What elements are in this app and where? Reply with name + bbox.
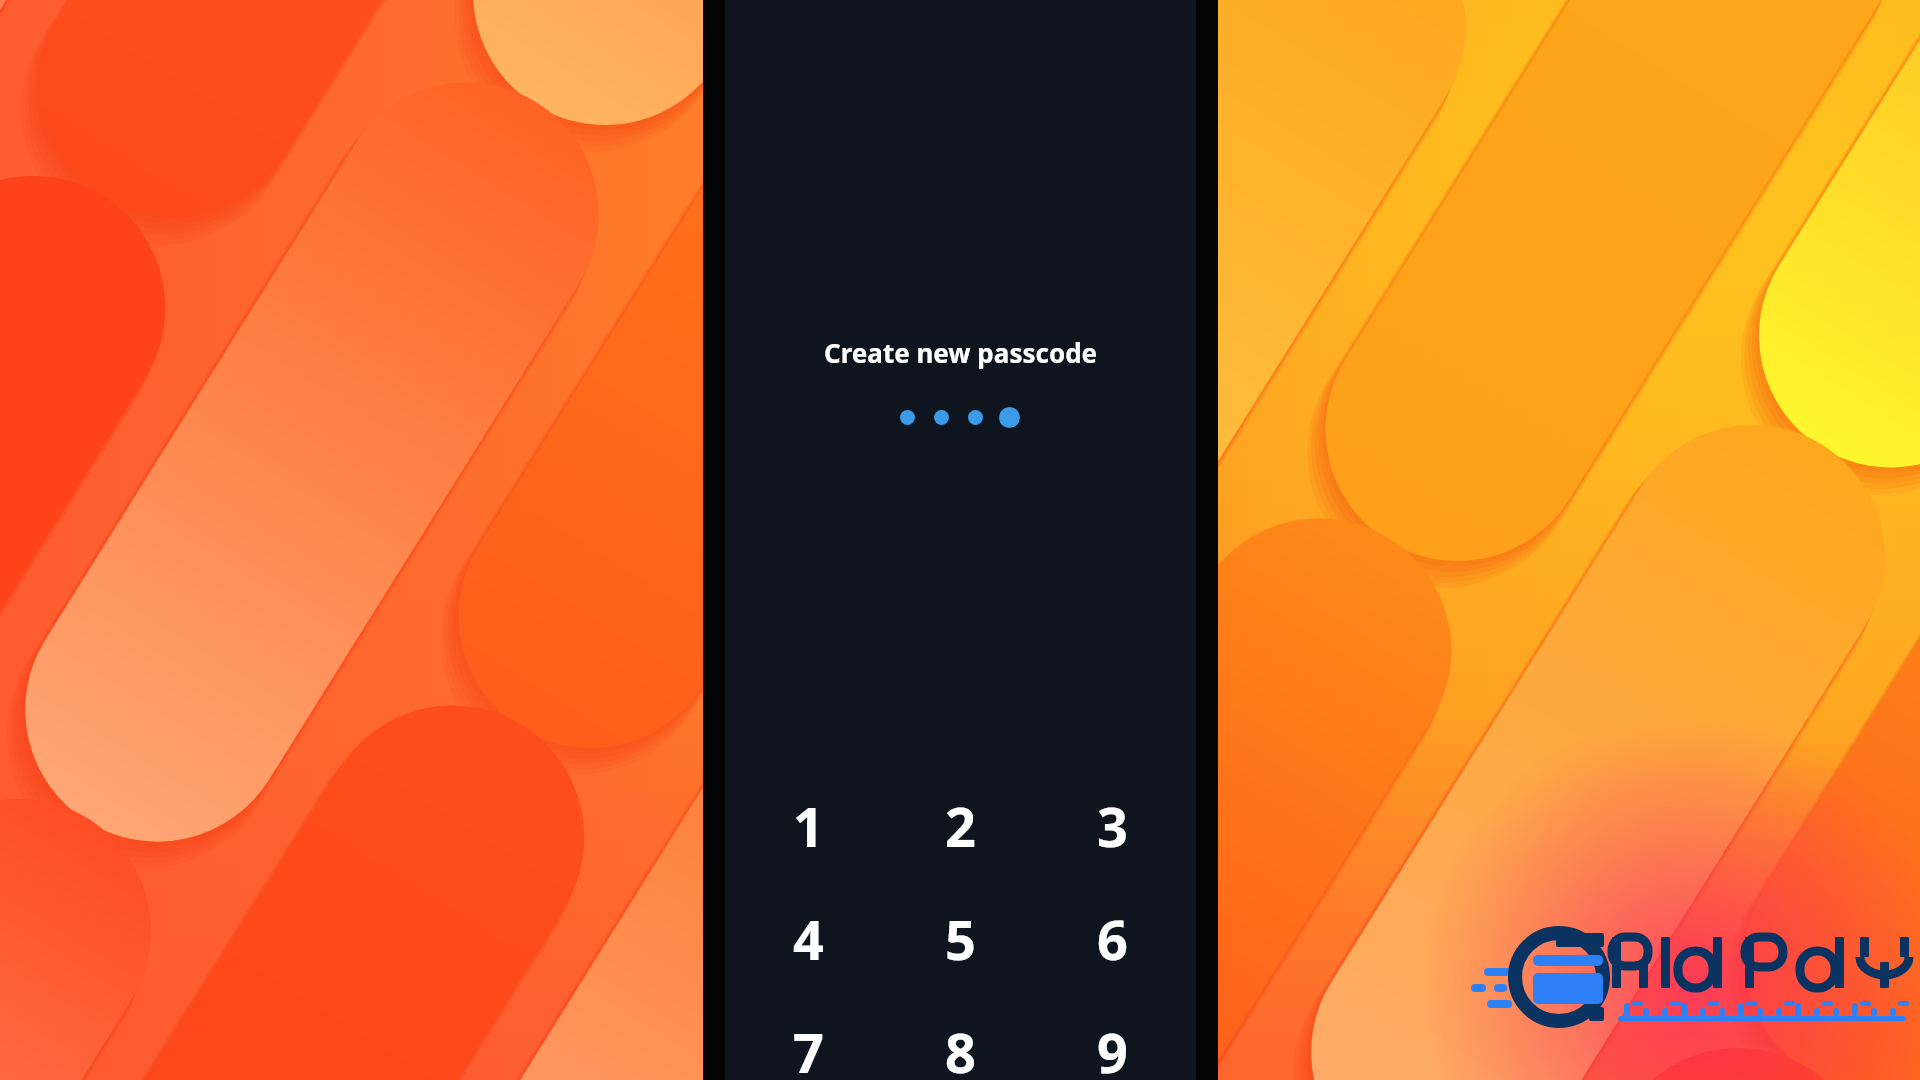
staticText: 3	[1097, 789, 1128, 863]
staticText: 4	[793, 902, 824, 976]
button[interactable]: 1	[733, 769, 884, 882]
button[interactable]: 5	[884, 882, 1036, 995]
staticText: Create new passcode	[824, 335, 1098, 370]
staticText: 7	[793, 1015, 824, 1080]
button[interactable]: 4	[733, 882, 884, 995]
staticText: 6	[1097, 902, 1128, 976]
button[interactable]: 9	[1036, 995, 1188, 1080]
button[interactable]: 8	[884, 995, 1036, 1080]
staticText: 2	[945, 789, 976, 863]
staticText: 1	[793, 789, 824, 863]
staticText: 9	[1097, 1015, 1128, 1080]
staticText: 5	[945, 902, 976, 976]
button[interactable]: 6	[1036, 882, 1188, 995]
staticText: 8	[945, 1015, 976, 1080]
button[interactable]: 7	[733, 995, 884, 1080]
button[interactable]: 3	[1036, 769, 1188, 882]
button[interactable]: 2	[884, 769, 1036, 882]
